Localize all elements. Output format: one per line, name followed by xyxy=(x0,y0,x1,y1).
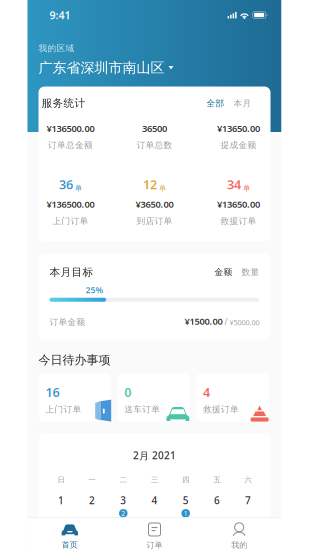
staticText: 三 xyxy=(151,475,158,484)
button[interactable]: 全部 xyxy=(206,98,224,109)
staticText: 送车订单 xyxy=(124,404,160,415)
staticText: ¥13650.00 xyxy=(217,198,260,211)
button[interactable]: 首页 xyxy=(27,518,112,550)
button[interactable]: 4 xyxy=(196,374,269,422)
staticText: ¥3650.00 xyxy=(135,198,173,211)
button[interactable]: 数量 xyxy=(241,267,259,278)
button[interactable]: 2 xyxy=(76,493,108,517)
staticText: 12 xyxy=(143,176,157,193)
staticText: 金额 xyxy=(214,267,232,278)
staticText: 4 xyxy=(203,384,210,401)
button[interactable]: 7 xyxy=(232,493,264,517)
staticText: 5 xyxy=(183,493,189,507)
staticText: 1 xyxy=(184,509,188,518)
staticText: ¥136500.00 xyxy=(46,122,94,135)
button[interactable]: 0 xyxy=(117,374,190,422)
staticText: ¥13650.00 xyxy=(217,122,260,135)
staticText: 25% xyxy=(85,284,103,296)
staticText: 四 xyxy=(182,475,189,484)
staticText: 本月目标 xyxy=(49,265,93,279)
staticText: 2 xyxy=(121,509,125,518)
staticText: 订单 xyxy=(146,540,162,550)
staticText: 服务统计 xyxy=(41,97,85,110)
button[interactable]: 5 xyxy=(170,493,201,517)
staticText: 2 xyxy=(89,493,95,507)
staticText: 上门订单 xyxy=(45,404,81,415)
staticText: 36500 xyxy=(142,122,167,135)
staticText: 广东省深圳市南山区 xyxy=(38,59,164,76)
button[interactable]: 我的 xyxy=(197,518,281,550)
button[interactable]: 1 xyxy=(45,493,76,517)
staticText: / xyxy=(222,317,229,327)
button[interactable]: 金额 xyxy=(214,267,232,278)
staticText: 数量 xyxy=(241,267,259,278)
staticText: 36 xyxy=(59,176,73,193)
staticText: 我的 xyxy=(231,540,247,550)
staticText: 上门订单 xyxy=(52,216,88,226)
staticText: 单 xyxy=(243,184,250,193)
staticText: 4 xyxy=(151,493,157,507)
staticText: 订单总数 xyxy=(136,140,172,151)
staticText: 订单金额 xyxy=(49,316,85,327)
button[interactable]: 6 xyxy=(201,493,232,517)
staticText: 提成金额 xyxy=(220,140,256,151)
staticText: 首页 xyxy=(62,540,78,550)
staticText: 本月 xyxy=(233,98,251,109)
staticText: 到店订单 xyxy=(136,216,172,226)
staticText: 二 xyxy=(120,475,127,484)
staticText: ¥136500.00 xyxy=(46,198,94,211)
button[interactable]: 3 xyxy=(108,493,139,517)
staticText: ¥1500.00 xyxy=(184,315,222,327)
staticText: 34 xyxy=(227,176,241,193)
staticText: 0 xyxy=(124,384,131,401)
staticText: 日 xyxy=(57,475,64,484)
staticText: 我的区域 xyxy=(38,43,74,54)
staticText: 3 xyxy=(120,493,126,507)
staticText: 单 xyxy=(75,184,82,193)
staticText: 救援订单 xyxy=(220,216,256,226)
button[interactable]: 订单 xyxy=(112,518,197,550)
staticText: 订单总金额 xyxy=(48,140,93,151)
staticText: 16 xyxy=(45,384,59,401)
staticText: 7 xyxy=(245,493,251,507)
button[interactable]: 16 xyxy=(38,374,111,422)
staticText: 救援订单 xyxy=(203,404,239,415)
staticText: 全部 xyxy=(206,98,224,109)
staticText: 五 xyxy=(213,475,220,484)
button[interactable]: 4 xyxy=(139,493,170,517)
staticText: 一 xyxy=(89,475,96,484)
button[interactable]: 本月 xyxy=(233,98,251,109)
button[interactable]: 广东省深圳市南山区 xyxy=(38,59,173,76)
staticText: 9:41 xyxy=(49,8,70,22)
staticText: 六 xyxy=(245,475,252,484)
staticText: 单 xyxy=(159,184,166,193)
staticText: 6 xyxy=(214,493,220,507)
staticText: ¥5000.00 xyxy=(229,317,259,327)
staticText: 1 xyxy=(58,493,64,507)
staticText: 今日待办事项 xyxy=(38,352,110,368)
staticText: 2月 2021 xyxy=(133,449,176,462)
